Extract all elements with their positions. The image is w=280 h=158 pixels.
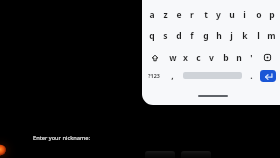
staticText: o [256, 9, 262, 21]
button[interactable]: g [199, 27, 212, 44]
button[interactable]: d [172, 27, 185, 44]
staticText: . [250, 70, 253, 82]
staticText: z [163, 9, 168, 21]
staticText: v [209, 52, 214, 64]
staticText: g [203, 30, 209, 42]
button[interactable]: m [265, 27, 278, 44]
button[interactable]: s [159, 27, 172, 44]
staticText: c [196, 52, 201, 64]
button[interactable]: b [219, 49, 232, 66]
staticText: x [183, 52, 188, 64]
button[interactable]: , [166, 67, 179, 84]
button[interactable]: h [212, 27, 225, 44]
button[interactable]: e [172, 6, 185, 23]
button[interactable]: c [192, 49, 205, 66]
button[interactable]: o [252, 6, 265, 23]
staticText: e [176, 9, 182, 21]
staticText: y [216, 9, 221, 21]
staticText: l [257, 30, 260, 42]
button[interactable]: x [179, 49, 192, 66]
button[interactable]: Space [182, 67, 242, 84]
button[interactable]: k [238, 27, 251, 44]
staticText: w [169, 52, 177, 64]
button[interactable]: r [185, 6, 198, 23]
staticText: p [269, 9, 275, 21]
button[interactable]: Shift [145, 49, 164, 66]
button[interactable]: Enter your nickname: [33, 134, 90, 142]
staticText: ' [250, 52, 253, 64]
button[interactable]: a [145, 6, 158, 23]
button[interactable]: ' [245, 49, 258, 66]
staticText: j [230, 30, 233, 42]
button[interactable]: u [225, 6, 238, 23]
button[interactable]: Symbols [144, 67, 163, 84]
button[interactable]: w [166, 49, 179, 66]
staticText: d [176, 30, 182, 42]
button[interactable]: Backspace [258, 49, 277, 66]
staticText: i [243, 9, 246, 21]
staticText: u [229, 9, 235, 21]
button[interactable]: l [252, 27, 265, 44]
button[interactable]: q [145, 27, 158, 44]
staticText: m [267, 30, 276, 42]
staticText: q [149, 30, 155, 42]
button[interactable]: z [159, 6, 172, 23]
button[interactable]: . [245, 67, 258, 84]
staticText: f [190, 30, 194, 42]
staticText: k [242, 30, 248, 42]
button[interactable]: y [212, 6, 225, 23]
staticText: b [223, 52, 229, 64]
staticText: r [190, 9, 194, 21]
button[interactable]: j [225, 27, 238, 44]
staticText: s [163, 30, 168, 42]
button[interactable]: n [232, 49, 245, 66]
button[interactable]: Enter [258, 67, 277, 84]
button[interactable]: f [185, 27, 198, 44]
staticText: , [171, 70, 174, 82]
staticText: a [149, 9, 155, 21]
button[interactable]: i [238, 6, 251, 23]
button[interactable]: t [199, 6, 212, 23]
button[interactable]: v [205, 49, 218, 66]
staticText: h [216, 30, 222, 42]
staticText: ?123 [148, 72, 160, 79]
button[interactable]: p [265, 6, 278, 23]
staticText: n [236, 52, 242, 64]
staticText: t [204, 9, 208, 21]
